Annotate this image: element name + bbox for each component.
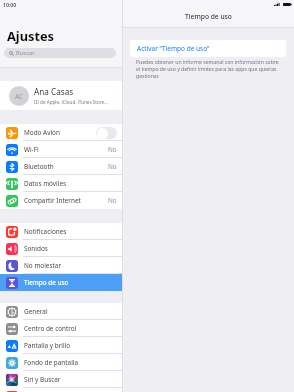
staticText: Ajustes <box>7 27 55 44</box>
button[interactable]: Bluetooth <box>0 158 122 175</box>
button[interactable]: Buscar <box>4 48 116 58</box>
button[interactable]: General <box>0 303 122 320</box>
staticText: Pantalla y brillo <box>24 341 71 350</box>
staticText: Tiempo de uso <box>185 12 232 21</box>
button[interactable]: Modo Avión <box>0 124 122 141</box>
button[interactable]: Compartir Internet <box>0 192 122 209</box>
staticText: Buscar <box>16 49 35 57</box>
staticText: Modo Avión <box>24 128 60 137</box>
staticText: 10:00 <box>3 1 17 8</box>
staticText: Wi-Fi <box>24 145 39 154</box>
staticText: Datos móviles <box>24 179 67 188</box>
staticText: Puedes obtener un informe semanal con in… <box>136 59 281 80</box>
button[interactable]: Touch ID y código <box>0 388 122 392</box>
button[interactable]: Centro de control <box>0 320 122 337</box>
staticText: Fondo de pantalla <box>24 358 79 367</box>
staticText: Siri y Buscar <box>24 375 61 384</box>
button[interactable]: Notificaciones <box>0 223 122 240</box>
button[interactable]: Fondo de pantalla <box>0 354 122 371</box>
button[interactable]: AC <box>0 81 122 110</box>
staticText: No <box>108 145 117 154</box>
staticText: Tiempo de uso <box>24 278 69 287</box>
staticText: Centro de control <box>24 324 77 333</box>
button[interactable]: Modo Avión <box>96 127 117 139</box>
staticText: Notificaciones <box>24 227 67 236</box>
button[interactable]: Wi-Fi <box>0 141 122 158</box>
staticText: ID de Apple, iCloud, iTunes Store… <box>34 99 108 105</box>
staticText: Ana Casas <box>34 86 74 97</box>
staticText: Compartir Internet <box>24 196 81 205</box>
staticText: AC <box>15 92 23 100</box>
button[interactable]: Datos móviles <box>0 175 122 192</box>
button[interactable]: Tiempo de uso <box>0 274 122 291</box>
button[interactable]: Pantalla y brillo <box>0 337 122 354</box>
staticText: No molestar <box>24 261 62 270</box>
staticText: Sonidos <box>24 244 48 253</box>
button[interactable]: Activar “Tiempo de uso” <box>130 40 286 57</box>
staticText: No <box>108 162 117 171</box>
staticText: No <box>108 196 117 205</box>
staticText: Bluetooth <box>24 162 54 171</box>
button[interactable]: Sonidos <box>0 240 122 257</box>
staticText: Activar “Tiempo de uso” <box>137 44 210 53</box>
staticText: General <box>24 307 48 316</box>
button[interactable]: No molestar <box>0 257 122 274</box>
button[interactable]: Siri y Buscar <box>0 371 122 388</box>
